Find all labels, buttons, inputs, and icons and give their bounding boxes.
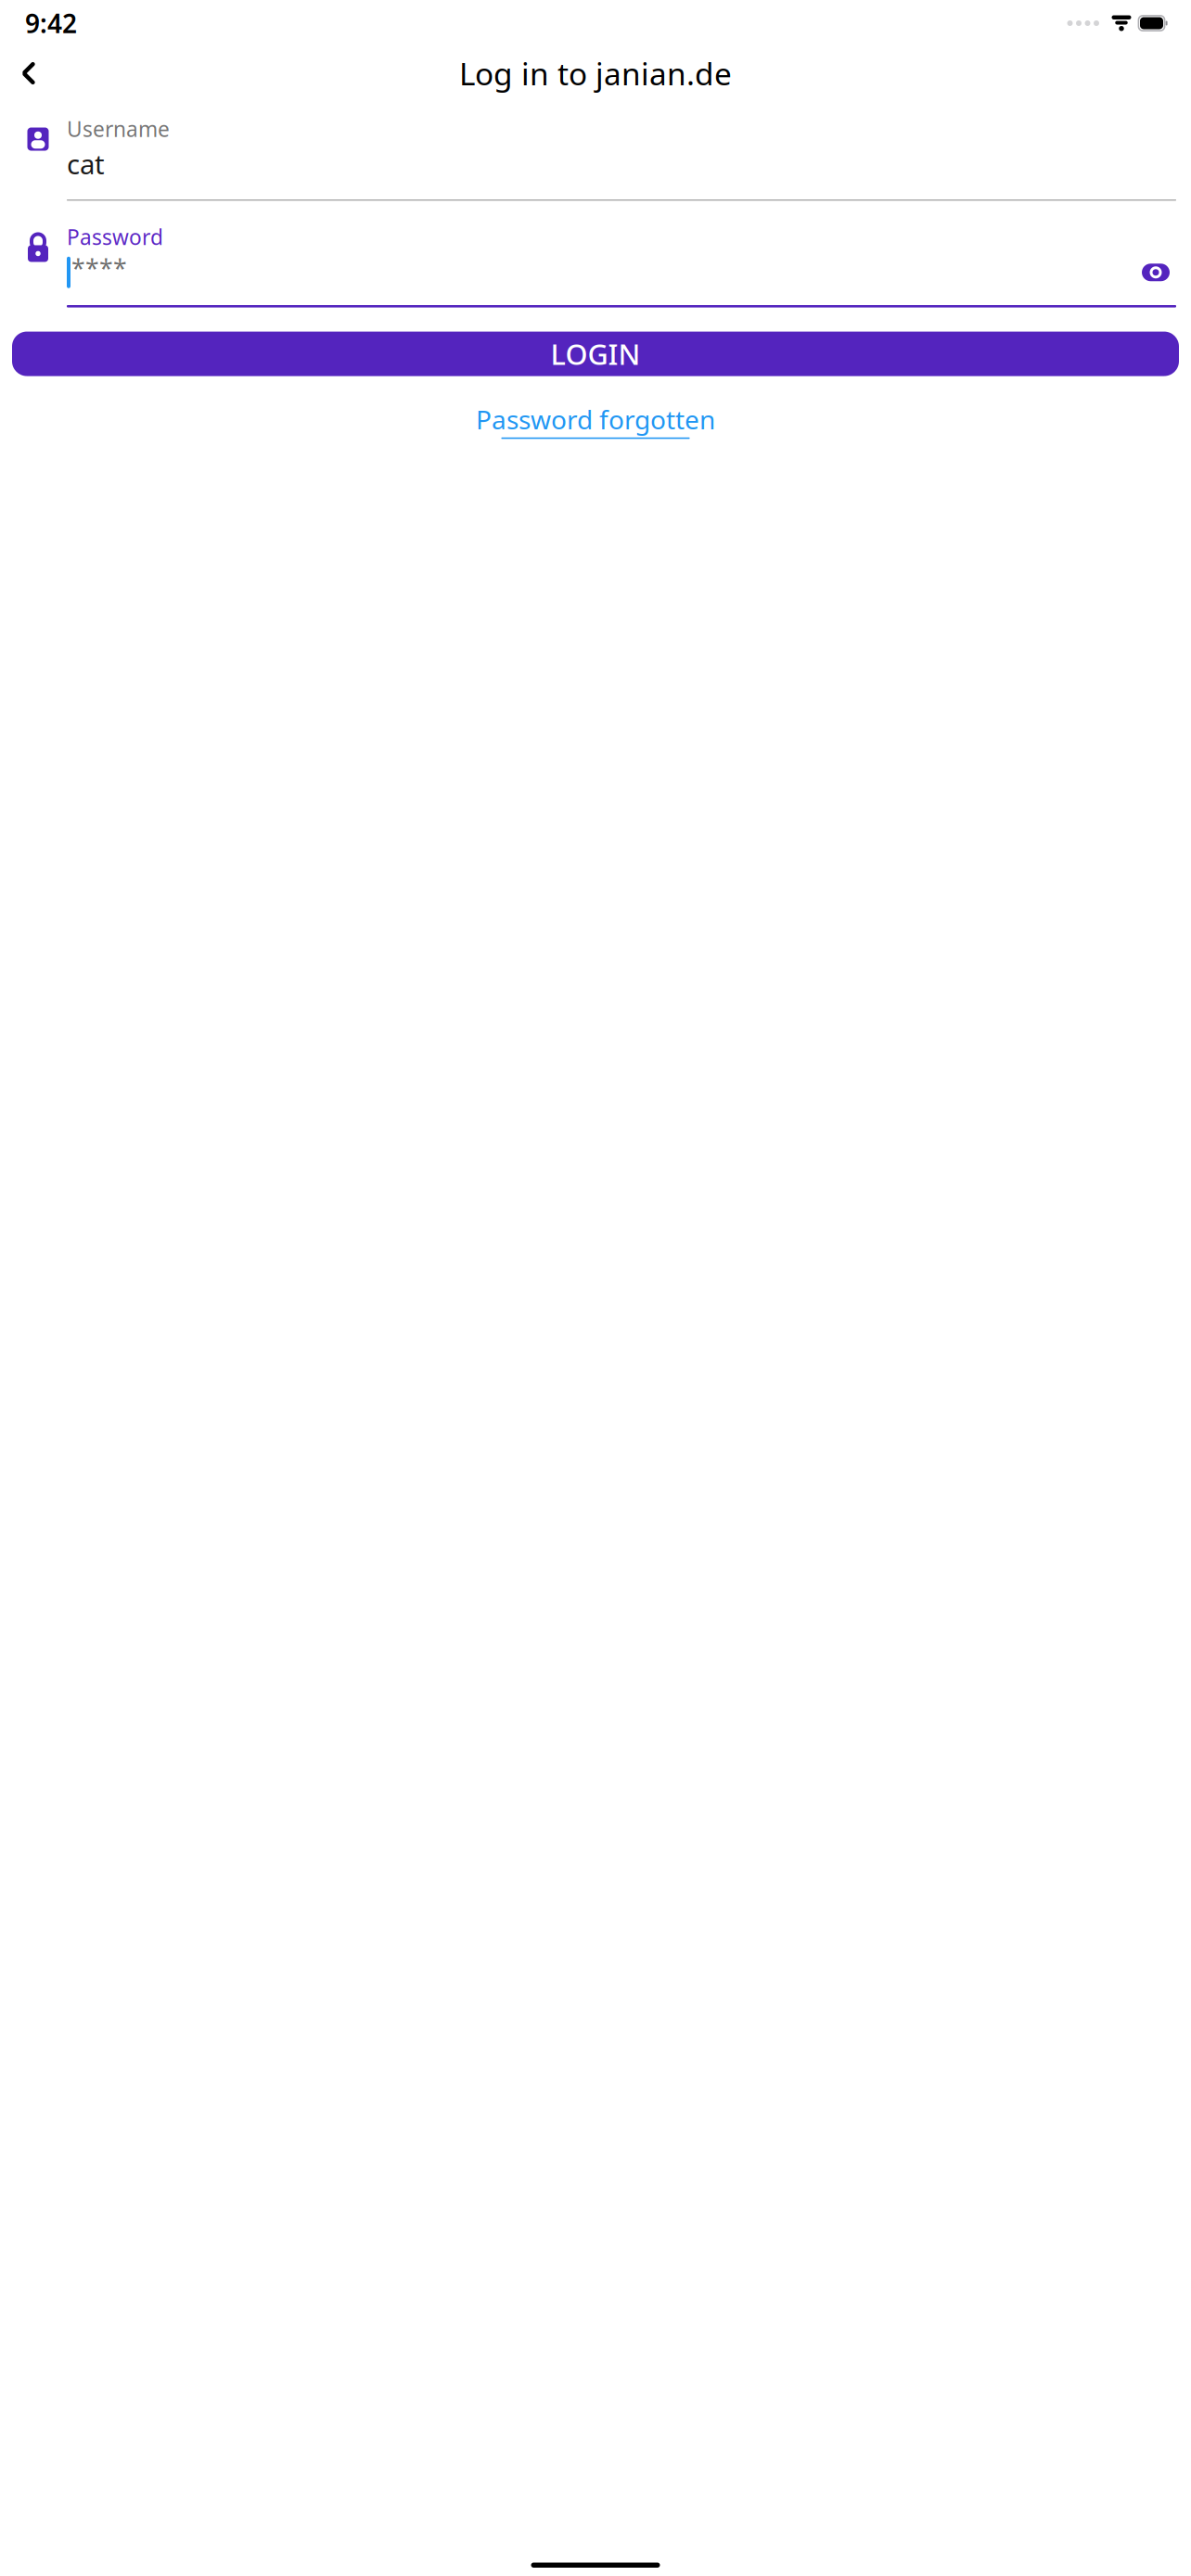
button[interactable]: LOGIN [12,332,1179,376]
staticText: 9:42 [25,6,77,40]
staticText: Password forgotten [476,402,715,437]
button[interactable]: Show password [1135,256,1176,289]
staticText: Log in to janian.de [459,53,732,94]
staticText: Username [67,115,170,143]
staticText: **** [71,252,127,285]
button[interactable]: Back [8,53,49,94]
button[interactable]: Password forgotten [465,397,726,445]
staticText: Password [67,223,163,251]
staticText: LOGIN [551,335,640,373]
staticText: cat [67,146,105,182]
